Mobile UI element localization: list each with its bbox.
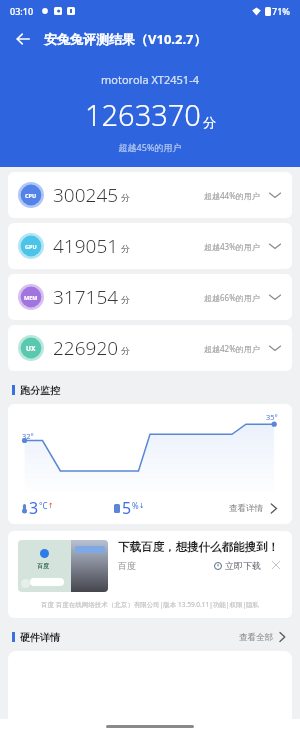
staticText: 分 [121, 243, 130, 254]
staticText: UX [26, 344, 36, 353]
staticText: MEM [24, 294, 38, 301]
button[interactable]: 立即下载 [214, 560, 261, 571]
staticText: 03:10 [10, 5, 34, 17]
staticText: 分 [121, 294, 130, 305]
staticText: 安兔兔评测结果（V10.2.7） [44, 30, 207, 48]
staticText: ↑ [48, 502, 54, 510]
staticText: 71% [272, 5, 290, 17]
staticText: 32° [22, 431, 34, 441]
staticText: 5 [122, 497, 132, 519]
staticText: GPU [25, 243, 37, 250]
button[interactable]: CPU [8, 172, 292, 218]
button[interactable]: 百度 [8, 531, 292, 618]
staticText: 分 [121, 345, 130, 356]
staticText: 下载百度，想搜什么都能搜到！ [118, 540, 279, 554]
staticText: 分 [203, 114, 216, 130]
staticText: ↓ [139, 502, 145, 510]
button[interactable]: 查看全部 [239, 631, 288, 643]
staticText: 跑分监控 [20, 384, 60, 397]
staticText: % [132, 500, 139, 511]
button[interactable]: Back [10, 26, 36, 52]
button[interactable]: UX [8, 325, 292, 371]
staticText: 百度 [118, 560, 136, 571]
staticText: CPU [25, 192, 37, 199]
staticText: 3 [29, 497, 39, 519]
button[interactable]: Close ad [270, 559, 282, 571]
staticText: 419051 [53, 233, 119, 259]
staticText: 1263370 [85, 95, 201, 134]
staticText: 百度 百度在线网络技术（北京）有限公司|版本 13.59.0.11|功能|权限|… [18, 600, 282, 609]
staticText: 35° [266, 412, 278, 422]
staticText: motorola XT2451-4 [0, 72, 300, 87]
staticText: 查看全部 [239, 632, 273, 643]
staticText: °C [39, 500, 48, 511]
button[interactable]: 查看详情 [229, 502, 280, 515]
staticText: 226920 [53, 335, 119, 361]
staticText: 查看详情 [229, 503, 263, 514]
staticText: 硬件详情 [20, 631, 60, 644]
staticText: 分 [121, 192, 130, 203]
staticText: 超越45%的用户 [0, 141, 300, 153]
button[interactable]: MEM [8, 274, 292, 320]
staticText: 立即下载 [225, 560, 261, 571]
staticText: 超越42%的用户 [204, 343, 260, 354]
staticText: 300245 [53, 182, 119, 208]
staticText: 超越66%的用户 [204, 292, 260, 303]
staticText: 超越43%的用户 [204, 241, 260, 252]
staticText: 317154 [53, 284, 119, 310]
button[interactable]: GPU [8, 223, 292, 269]
staticText: 百度 [37, 562, 49, 570]
staticText: 超越44%的用户 [204, 190, 260, 201]
